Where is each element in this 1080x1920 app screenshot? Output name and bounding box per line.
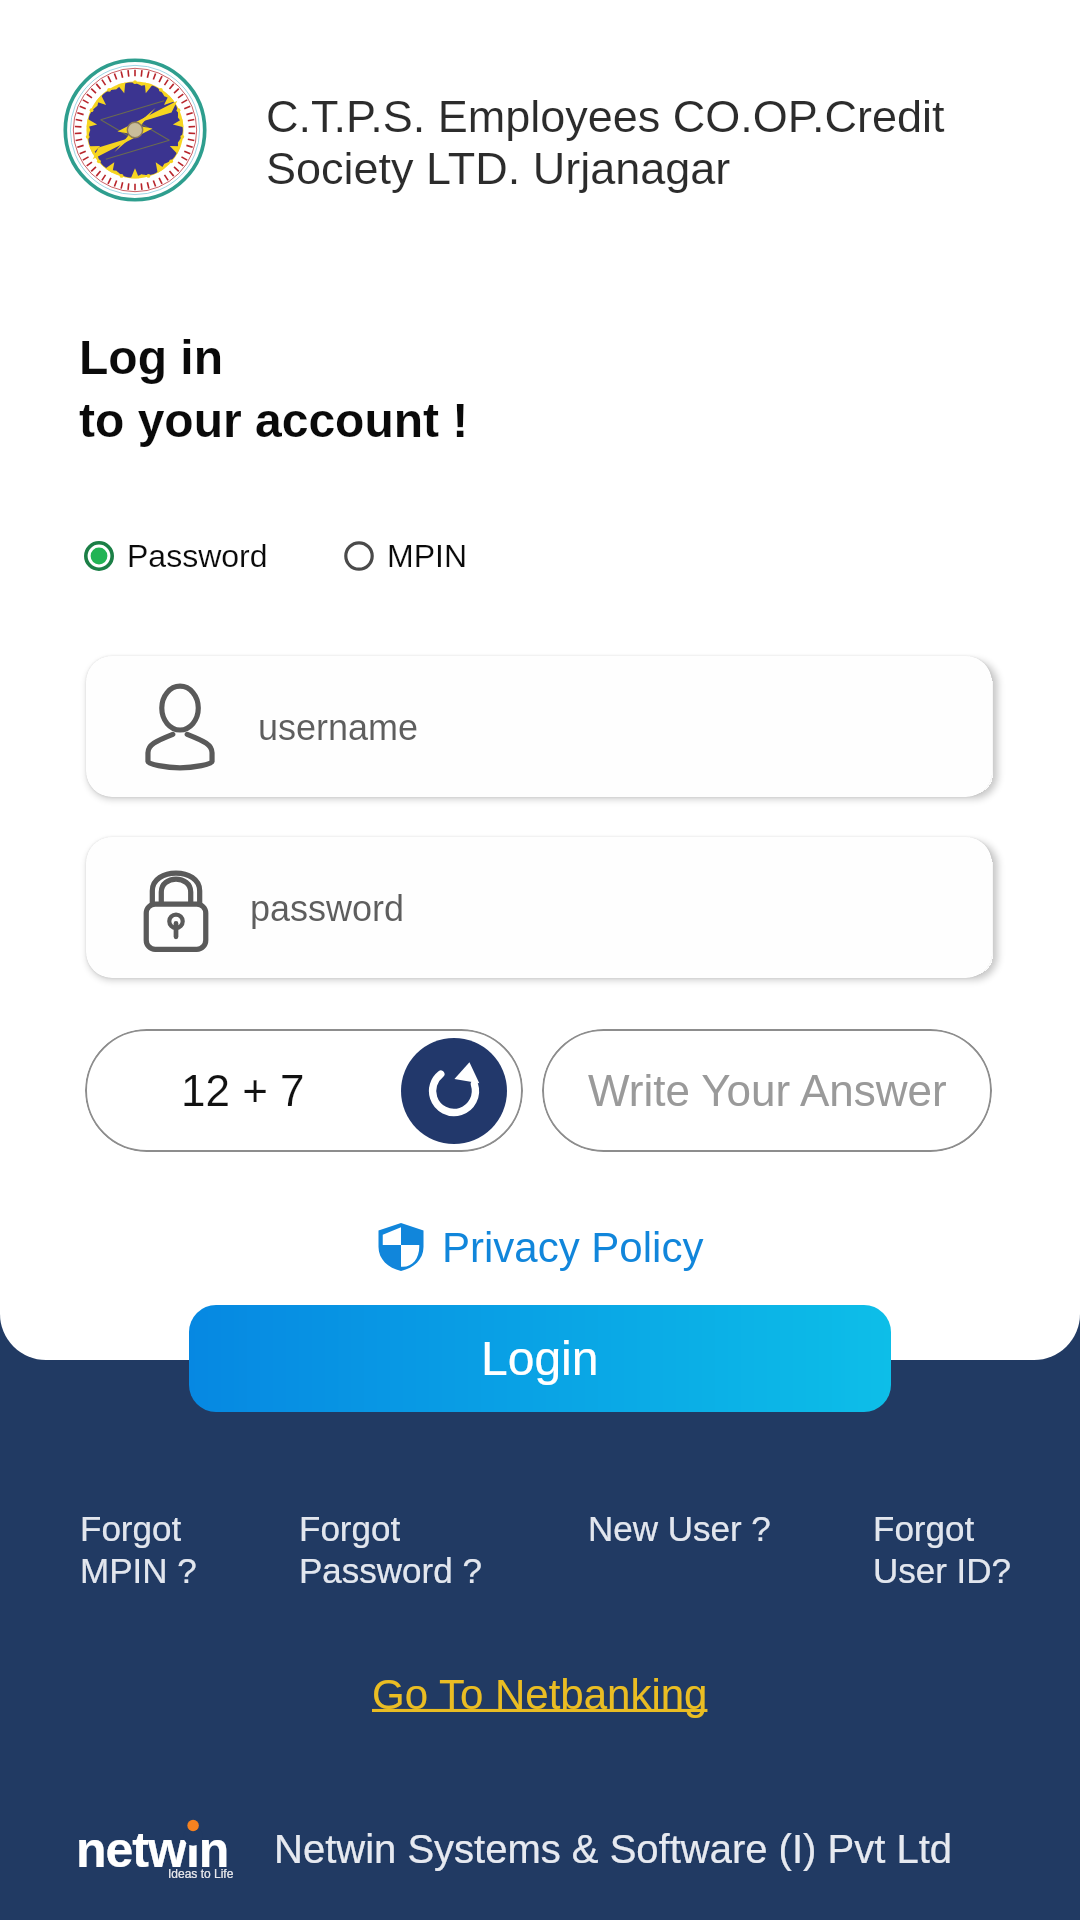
staticText: 12 + 7 [181,1066,305,1115]
staticText: password [250,888,405,928]
staticText: Password [127,538,268,574]
button[interactable]: Password [84,538,268,574]
staticText: MPIN [387,538,467,574]
staticText: Forgot User ID? [873,1509,1012,1590]
button[interactable]: Forgot MPIN ? [80,1509,197,1590]
staticText: Login [481,1332,599,1386]
staticText: Forgot MPIN ? [80,1509,197,1590]
button[interactable]: password [86,837,992,978]
staticText: Ideas to Life [168,1867,234,1880]
staticText: Log in to your account ! [79,331,469,447]
button[interactable]: Refresh captcha [401,1038,507,1144]
button[interactable]: Login [189,1305,891,1412]
button[interactable]: Forgot Password ? [299,1509,482,1590]
staticText: Privacy Policy [442,1224,704,1271]
button[interactable]: 12 + 7 [85,1029,523,1152]
button[interactable]: Forgot User ID? [873,1509,1012,1590]
button[interactable]: Write Your Answer [542,1029,992,1152]
staticText: Forgot Password ? [299,1509,482,1590]
staticText: netwin [76,1822,229,1878]
staticText: Write Your Answer [588,1066,947,1115]
staticText: C.T.P.S. Employees CO.OP.Credit Society … [266,91,945,193]
button[interactable]: Privacy Policy [0,1222,1080,1272]
button[interactable]: New User ? [588,1509,771,1548]
staticText: username [258,707,419,747]
staticText: Go To Netbanking [372,1671,708,1718]
button[interactable]: MPIN [344,538,467,574]
staticText: Netwin Systems & Software (I) Pvt Ltd [274,1827,952,1872]
button[interactable]: Go To Netbanking [0,1671,1080,1718]
button[interactable]: username [86,656,992,797]
staticText: New User ? [588,1509,771,1548]
